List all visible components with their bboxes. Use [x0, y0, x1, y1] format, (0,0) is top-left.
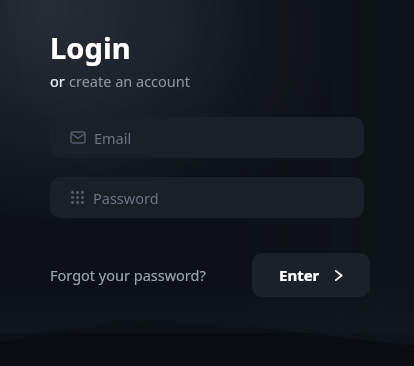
button[interactable]: Forgot your password?	[50, 261, 206, 289]
staticText: Forgot your password?	[50, 265, 206, 285]
button[interactable]: Password	[50, 177, 364, 218]
staticText: Login	[50, 28, 131, 67]
button[interactable]: Enter	[252, 253, 370, 297]
staticText: Enter	[279, 265, 320, 285]
button[interactable]: Email	[50, 117, 364, 158]
button[interactable]: create an account	[69, 71, 191, 91]
staticText: Email	[94, 128, 132, 148]
staticText: or	[50, 71, 69, 91]
staticText: Password	[93, 188, 159, 208]
